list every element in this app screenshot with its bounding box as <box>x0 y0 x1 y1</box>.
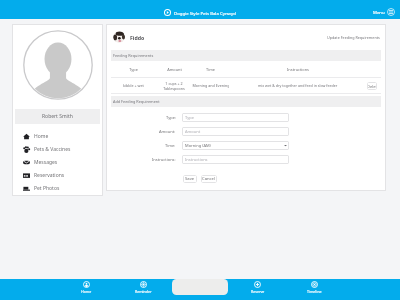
staticText: Save <box>185 176 195 182</box>
button[interactable]: Update Feeding Requirements <box>326 34 381 41</box>
staticText: Home <box>34 133 49 140</box>
button[interactable]: Home <box>58 279 115 300</box>
button[interactable]: Robert Smith <box>15 109 100 124</box>
staticText: Doggie Style Pets Bala Cynwyd <box>174 10 236 16</box>
staticText: Time <box>206 67 215 72</box>
button[interactable]: Instructions <box>182 155 289 164</box>
staticText: Morning (AM) <box>185 143 211 148</box>
button[interactable]: Timeline <box>286 279 343 300</box>
button[interactable]: Pets & Vaccines <box>12 143 103 156</box>
button[interactable]: Scan <box>172 279 228 295</box>
staticText: Feeding Requirements <box>113 53 154 58</box>
staticText: Instructions <box>185 157 208 162</box>
button[interactable]: Morning (AM) <box>182 141 289 150</box>
button[interactable]: Reserve <box>229 279 286 300</box>
staticText: Type: <box>166 115 176 120</box>
staticText: Delete <box>367 84 377 89</box>
staticText: mix wet & dry together and feed in slow … <box>258 83 338 88</box>
button[interactable]: Home <box>12 130 103 143</box>
staticText: Amount: <box>159 129 176 134</box>
button[interactable]: Reservations <box>12 169 103 182</box>
button[interactable]: Messages <box>12 156 103 169</box>
staticText: Type <box>129 67 138 72</box>
button[interactable]: Type <box>182 113 289 122</box>
staticText: Home <box>81 289 92 294</box>
staticText: Pet Photos <box>34 185 60 192</box>
staticText: Instructions <box>287 67 309 72</box>
staticText: Update Feeding Requirements <box>327 35 380 40</box>
staticText: Time: <box>165 143 176 148</box>
button[interactable]: Cancel <box>201 175 217 183</box>
button[interactable]: Save <box>183 175 197 183</box>
button[interactable]: Amount <box>182 127 289 136</box>
button[interactable]: Delete <box>367 82 377 90</box>
staticText: 1 cups + 2 Tablespoons <box>163 81 185 91</box>
staticText: Robert Smith <box>42 113 73 120</box>
staticText: Messages <box>34 159 58 166</box>
staticText: Cancel <box>202 176 216 182</box>
staticText: kibble + wet <box>123 83 144 88</box>
button[interactable]: Pet Photos <box>12 182 103 195</box>
staticText: Reservations <box>34 172 65 179</box>
staticText: Morning and Evening <box>192 83 229 88</box>
staticText: Add Feeding Requirement <box>113 99 160 104</box>
staticText: Menu <box>373 9 385 15</box>
button[interactable]: Menu <box>371 6 397 18</box>
staticText: Fiddo <box>130 34 145 41</box>
staticText: Timeline <box>307 289 322 294</box>
staticText: Amount <box>167 67 182 72</box>
staticText: Amount <box>185 129 201 134</box>
staticText: Instructions: <box>152 157 176 162</box>
staticText: Reminder <box>135 289 152 294</box>
staticText: Type <box>185 115 194 120</box>
staticText: Pets & Vaccines <box>34 146 71 153</box>
staticText: Reserve <box>251 289 265 294</box>
button[interactable]: Reminder <box>115 279 172 300</box>
